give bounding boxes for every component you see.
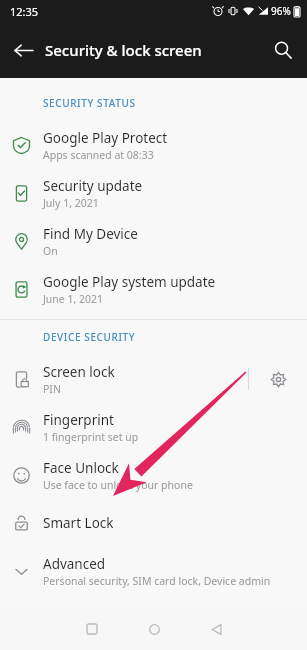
button[interactable]: Find My Device: [0, 217, 307, 265]
staticText: July 1, 2021: [43, 196, 99, 210]
staticText: Personal security, SIM card lock, Device…: [43, 574, 299, 588]
button[interactable]: Recents: [70, 608, 114, 650]
button[interactable]: Home: [132, 608, 176, 650]
staticText: Security update: [43, 177, 143, 195]
staticText: DEVICE SECURITY: [43, 330, 136, 344]
staticText: 96%: [271, 4, 291, 18]
staticText: Security & lock screen: [45, 40, 202, 60]
button[interactable]: Screen lock: [0, 355, 307, 403]
staticText: Google Play Protect: [43, 129, 168, 147]
staticText: Smart Lock: [43, 514, 114, 532]
button[interactable]: Search: [265, 32, 301, 68]
staticText: SECURITY STATUS: [43, 96, 136, 110]
staticText: Apps scanned at 08:33: [43, 148, 154, 162]
staticText: Use face to unlock your phone: [43, 478, 193, 492]
staticText: Find My Device: [43, 225, 138, 243]
staticText: Advanced: [43, 555, 106, 573]
button[interactable]: Face Unlock: [0, 451, 307, 499]
button[interactable]: Google Play system update: [0, 265, 307, 313]
button[interactable]: Screen lock settings: [249, 355, 307, 403]
staticText: Screen lock: [43, 363, 115, 381]
button[interactable]: Advanced: [0, 547, 307, 595]
staticText: 12:35: [10, 4, 39, 19]
button[interactable]: Back: [6, 33, 40, 67]
button[interactable]: Google Play Protect: [0, 121, 307, 169]
button[interactable]: Back: [194, 608, 238, 650]
staticText: PIN: [43, 382, 61, 396]
staticText: On: [43, 244, 58, 258]
staticText: June 1, 2021: [43, 292, 104, 306]
staticText: Google Play system update: [43, 273, 216, 291]
button[interactable]: Smart Lock: [0, 499, 307, 547]
staticText: Face Unlock: [43, 459, 119, 477]
button[interactable]: Security update: [0, 169, 307, 217]
button[interactable]: Fingerprint: [0, 403, 307, 451]
staticText: 1 fingerprint set up: [43, 430, 139, 444]
staticText: Fingerprint: [43, 411, 114, 429]
